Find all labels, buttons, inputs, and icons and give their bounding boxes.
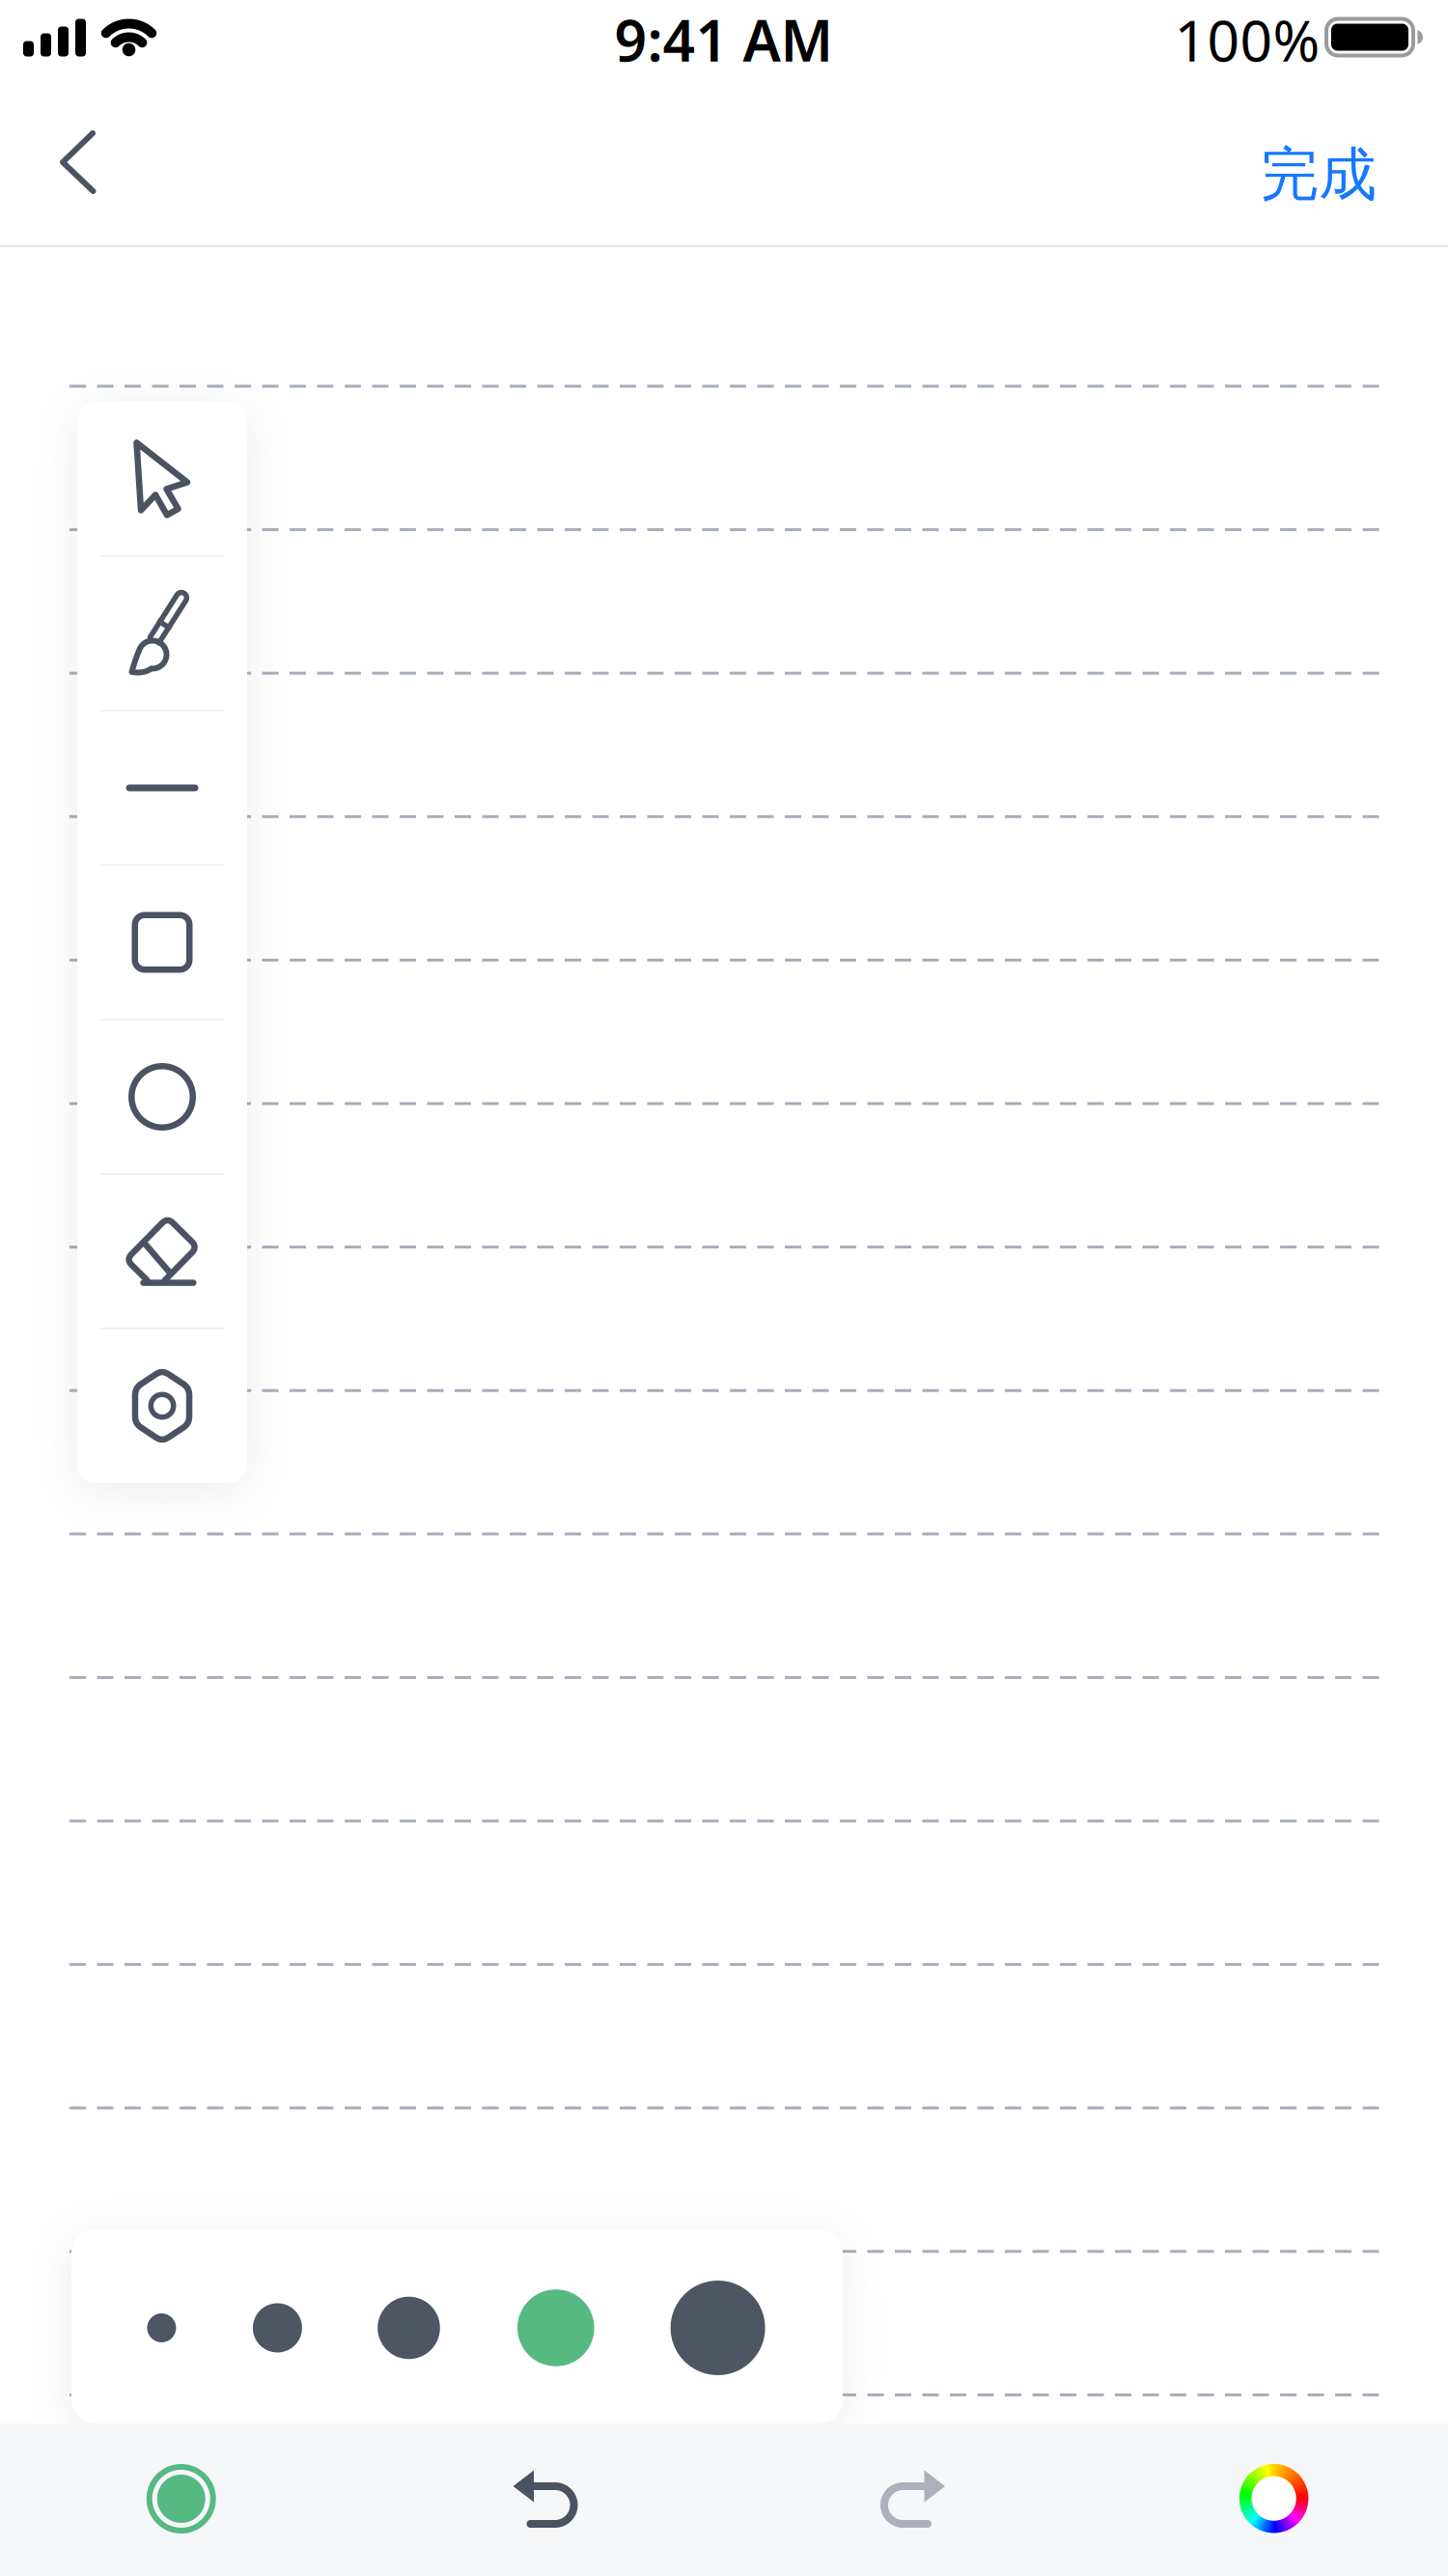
button[interactable]: Eraser [77, 1174, 247, 1329]
staticText: 9:41 AM [614, 2, 834, 77]
button[interactable]: Large stroke [503, 2241, 609, 2415]
button[interactable]: Rectangle [77, 865, 247, 1020]
button[interactable]: Small stroke [224, 2241, 331, 2415]
button[interactable]: Extra small stroke [109, 2241, 215, 2415]
button[interactable]: Brush [77, 556, 247, 711]
staticText: 完成 [1261, 139, 1377, 210]
staticText: 100% [1174, 2, 1320, 77]
button[interactable]: 完成 [1237, 131, 1401, 218]
button[interactable]: Ellipse [77, 1020, 247, 1174]
button[interactable]: Settings [77, 1329, 247, 1483]
button[interactable]: Redo [869, 2456, 956, 2543]
button[interactable]: Color picker [1230, 2455, 1317, 2542]
button[interactable]: Extra large stroke [665, 2241, 771, 2415]
button[interactable]: Current color [133, 2450, 229, 2547]
button[interactable]: Select [77, 402, 247, 556]
button[interactable]: Undo [502, 2456, 589, 2543]
button[interactable]: Back [35, 119, 122, 206]
button[interactable]: Line [77, 711, 247, 865]
button[interactable]: Medium stroke [356, 2241, 462, 2415]
